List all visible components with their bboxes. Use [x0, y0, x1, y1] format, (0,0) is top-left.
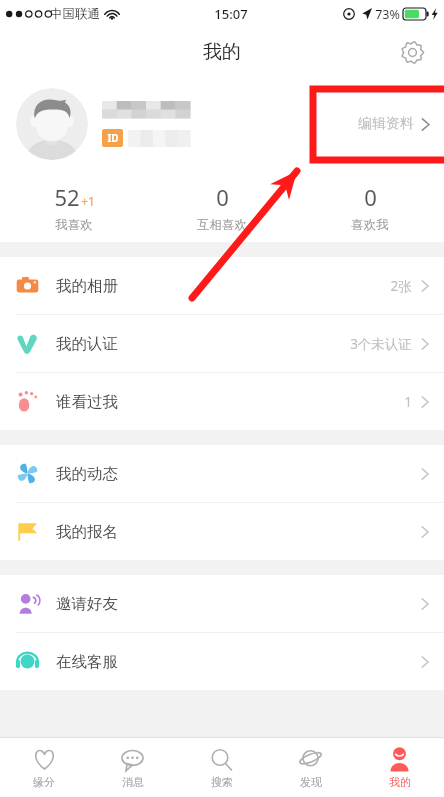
staticText: 消息 [122, 775, 144, 789]
button[interactable]: 在线客服 [0, 633, 444, 690]
staticText: 2张 [390, 277, 412, 295]
staticText: 互相喜欢 [197, 217, 247, 233]
staticText: +1 [81, 193, 95, 209]
staticText: 缘分 [33, 775, 55, 789]
staticText: 编辑资料 [358, 115, 414, 133]
staticText: 我的认证 [56, 334, 118, 354]
staticText: 15:07 [214, 5, 248, 23]
button[interactable]: 邀请好友 [0, 575, 444, 632]
staticText: 1 [404, 393, 412, 411]
staticText: 0 [364, 182, 377, 212]
button[interactable]: 我的动态 [0, 445, 444, 502]
button[interactable]: 编辑资料 [358, 76, 444, 172]
button[interactable]: 0 [296, 172, 444, 242]
button[interactable]: 我的报名 [0, 503, 444, 560]
staticText: 发现 [300, 775, 322, 789]
staticText: 我的 [389, 775, 411, 789]
button[interactable]: 谁看过我 [0, 373, 444, 430]
staticText: 我的 [203, 40, 241, 64]
button[interactable]: 发现 [266, 738, 355, 797]
button[interactable]: 52 [0, 172, 148, 242]
staticText: 73% [375, 6, 400, 23]
staticText: 我的相册 [56, 276, 118, 296]
button[interactable]: 搜索 [177, 738, 266, 797]
staticText: 我的报名 [56, 522, 118, 542]
staticText: 52 [54, 182, 80, 212]
staticText: 在线客服 [56, 652, 118, 672]
staticText: 谁看过我 [56, 392, 118, 412]
button[interactable]: 缘分 [0, 738, 88, 797]
staticText: 0 [216, 182, 229, 212]
staticText: 3个未认证 [350, 335, 412, 353]
staticText: ID [107, 131, 119, 145]
button[interactable]: 0 [148, 172, 296, 242]
button[interactable]: 消息 [88, 738, 177, 797]
button[interactable]: 我的 [355, 738, 444, 797]
button[interactable]: 我的相册 [0, 257, 444, 314]
staticText: 搜索 [211, 775, 233, 789]
staticText: 我喜欢 [55, 217, 93, 233]
staticText: 邀请好友 [56, 594, 118, 614]
button[interactable]: 我的认证 [0, 315, 444, 372]
staticText: 中国联通 [50, 6, 100, 22]
button[interactable]: Settings [392, 32, 432, 72]
staticText: 喜欢我 [351, 217, 389, 233]
staticText: 我的动态 [56, 464, 118, 484]
